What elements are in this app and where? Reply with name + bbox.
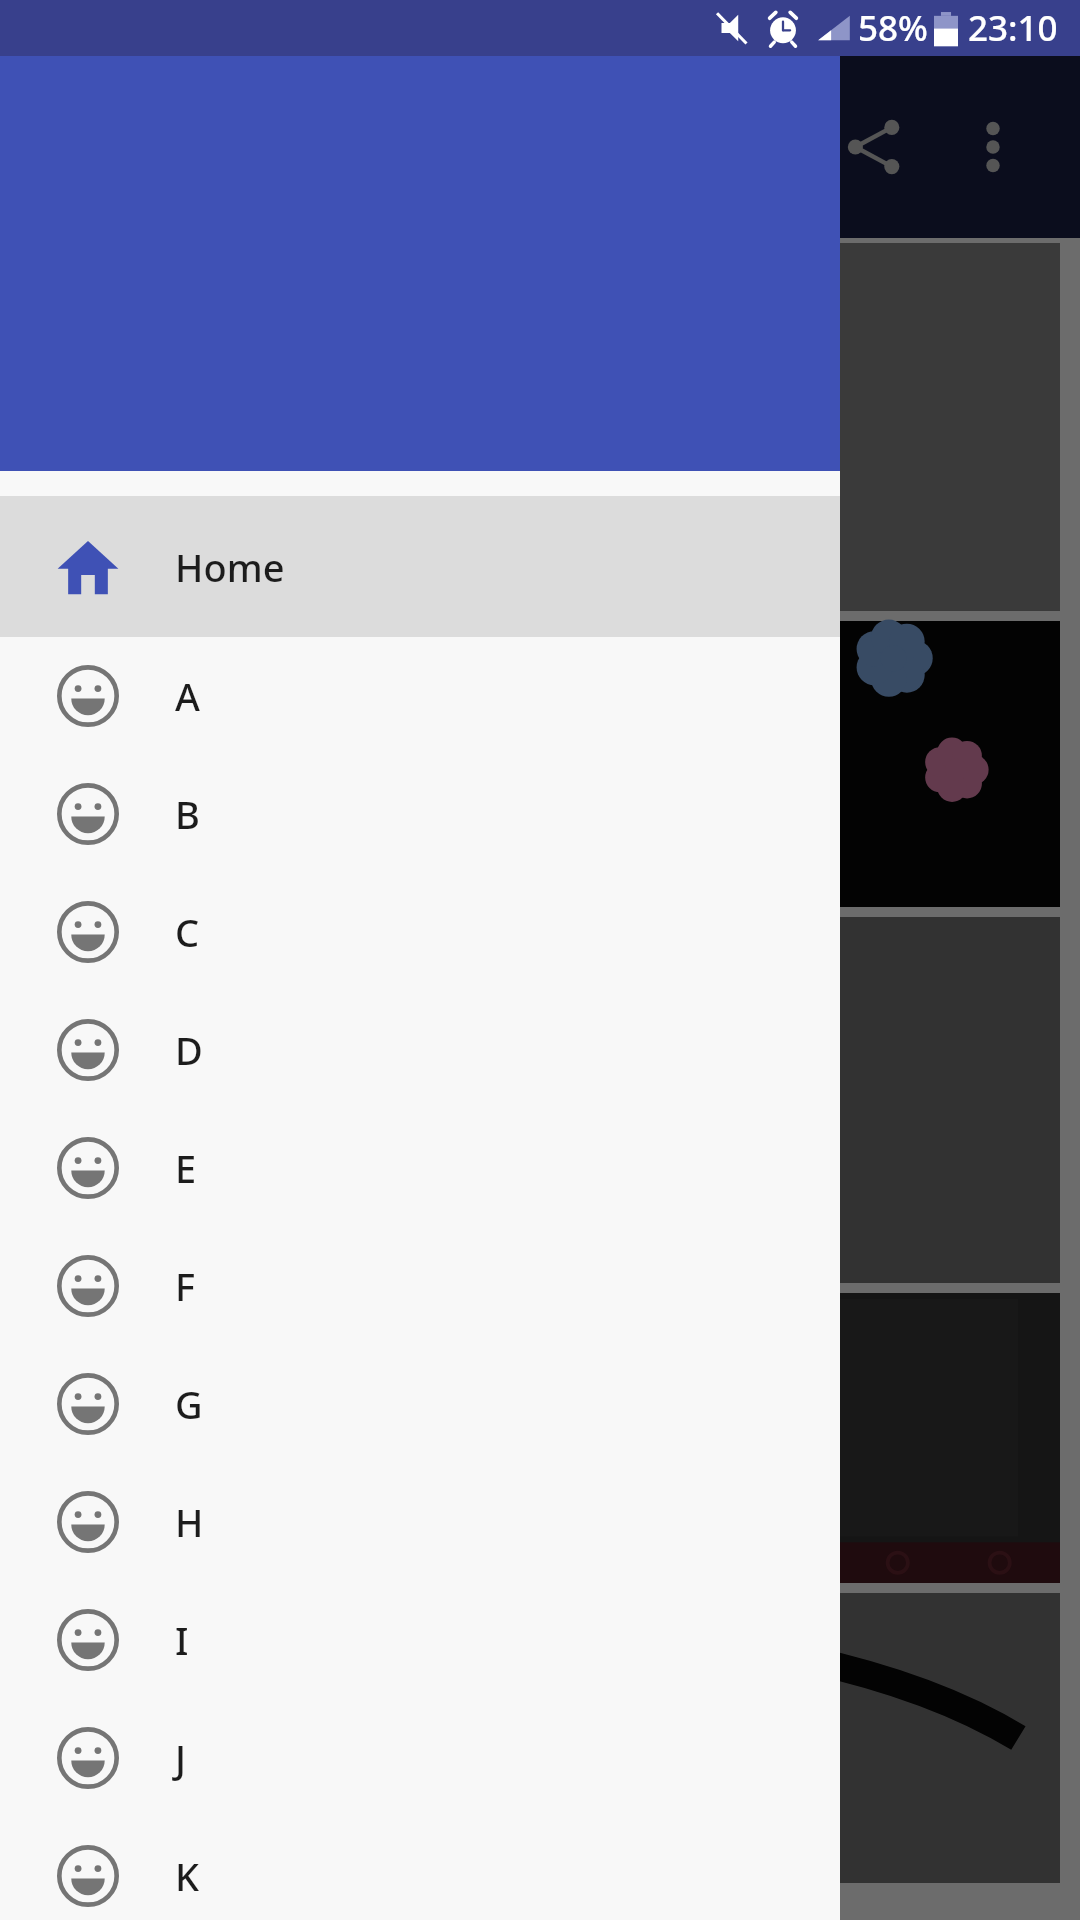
- staticText: A: [175, 670, 200, 722]
- button[interactable]: 6: [20, 621, 1060, 907]
- button[interactable]: E: [0, 1109, 840, 1227]
- button[interactable]: G: [0, 1345, 840, 1463]
- button[interactable]: [20, 1593, 1060, 1883]
- staticText: G: [175, 1378, 203, 1430]
- staticText: Home: [175, 541, 285, 593]
- staticText: F: [175, 1260, 196, 1312]
- staticText: H: [175, 1496, 204, 1548]
- staticText: C: [175, 906, 200, 958]
- button[interactable]: 12: [20, 1293, 1060, 1583]
- button[interactable]: Share: [816, 88, 934, 206]
- staticText: I: [175, 1614, 189, 1666]
- button[interactable]: J: [0, 1699, 840, 1817]
- staticText: K: [175, 1850, 200, 1902]
- button[interactable]: More options: [934, 88, 1052, 206]
- button[interactable]: 3: [20, 243, 1060, 611]
- staticText: 3: [381, 381, 420, 474]
- button[interactable]: A: [0, 637, 840, 755]
- staticText: 58%: [858, 4, 928, 52]
- button[interactable]: K: [0, 1817, 840, 1920]
- button[interactable]: B: [0, 755, 840, 873]
- button[interactable]: F: [0, 1227, 840, 1345]
- staticText: D: [175, 1024, 203, 1076]
- button[interactable]: H: [0, 1463, 840, 1581]
- staticText: 23:10: [968, 4, 1058, 52]
- button[interactable]: C: [0, 873, 840, 991]
- button[interactable]: 9: [20, 917, 1060, 1283]
- staticText: E: [175, 1142, 197, 1194]
- button[interactable]: Home: [0, 496, 840, 637]
- button[interactable]: I: [0, 1581, 840, 1699]
- button[interactable]: D: [0, 991, 840, 1109]
- staticText: J: [175, 1732, 187, 1784]
- staticText: B: [175, 788, 200, 840]
